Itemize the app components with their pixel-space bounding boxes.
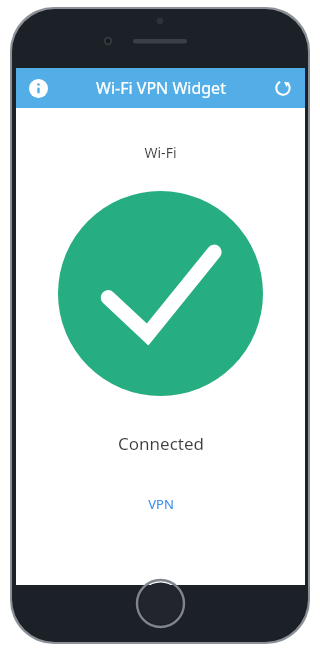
button[interactable]: VPN [134,490,188,518]
button[interactable]: Wi-Fi connected [58,191,263,396]
staticText: Wi-Fi VPN Widget [96,77,226,99]
button[interactable]: Info [23,73,53,103]
staticText: Connected [118,432,204,455]
button[interactable]: Refresh [268,73,298,103]
staticText: Wi-Fi [144,143,177,162]
staticText: VPN [148,495,174,513]
